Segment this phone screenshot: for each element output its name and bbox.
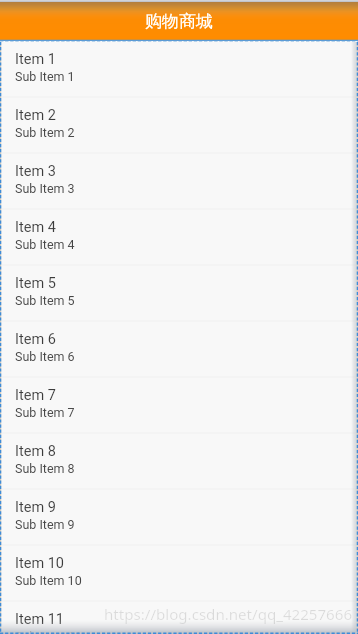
button[interactable]: Item 4 bbox=[0, 210, 358, 264]
button[interactable]: Item 11 bbox=[0, 602, 358, 634]
staticText: Item 11 bbox=[15, 611, 64, 628]
staticText: Sub Item 8 bbox=[15, 461, 75, 476]
button[interactable]: Item 5 bbox=[0, 266, 358, 320]
button[interactable]: Item 9 bbox=[0, 490, 358, 544]
staticText: Item 5 bbox=[15, 275, 56, 292]
staticText: Item 7 bbox=[15, 387, 56, 404]
staticText: Sub Item 10 bbox=[15, 573, 82, 588]
button[interactable]: Item 8 bbox=[0, 434, 358, 488]
staticText: Sub Item 1 bbox=[15, 69, 75, 84]
staticText: Sub Item 2 bbox=[15, 125, 75, 140]
button[interactable]: 购物商城 bbox=[0, 2, 358, 39]
button[interactable]: Item 10 bbox=[0, 546, 358, 600]
staticText: Item 10 bbox=[15, 555, 64, 572]
button[interactable]: Item 7 bbox=[0, 378, 358, 432]
staticText: Item 6 bbox=[15, 331, 56, 348]
staticText: Item 4 bbox=[15, 219, 56, 236]
button[interactable]: Item 3 bbox=[0, 154, 358, 208]
button[interactable]: Item 2 bbox=[0, 98, 358, 152]
staticText: Sub Item 11 bbox=[15, 629, 82, 634]
staticText: Sub Item 4 bbox=[15, 237, 75, 252]
staticText: Item 3 bbox=[15, 163, 56, 180]
staticText: Sub Item 3 bbox=[15, 181, 75, 196]
staticText: Sub Item 5 bbox=[15, 293, 75, 308]
staticText: Sub Item 6 bbox=[15, 349, 75, 364]
button[interactable]: Item 6 bbox=[0, 322, 358, 376]
staticText: Sub Item 7 bbox=[15, 405, 75, 420]
staticText: Item 8 bbox=[15, 443, 56, 460]
staticText: 购物商城 bbox=[145, 11, 213, 32]
staticText: Sub Item 9 bbox=[15, 517, 75, 532]
staticText: Item 9 bbox=[15, 499, 56, 516]
staticText: Item 1 bbox=[15, 51, 56, 68]
button[interactable]: Item 1 bbox=[0, 42, 358, 96]
staticText: https://blog.csdn.net/qq_42257666 bbox=[104, 604, 353, 625]
staticText: Item 2 bbox=[15, 107, 56, 124]
